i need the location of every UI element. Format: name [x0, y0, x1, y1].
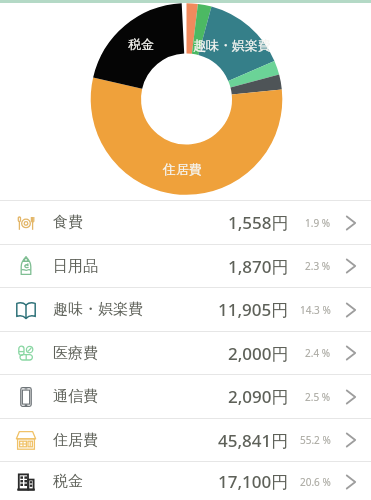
button[interactable]: 住居費	[0, 419, 371, 461]
staticText: 趣味・娯楽費	[193, 37, 271, 53]
staticText: 11,905円	[218, 298, 289, 321]
staticText: 通信費	[53, 387, 98, 406]
button[interactable]: 趣味・娯楽費	[0, 288, 371, 331]
staticText: 1.9 %	[305, 216, 331, 230]
staticText: 1,870円	[228, 255, 289, 278]
button[interactable]: 医療費	[0, 332, 371, 374]
staticText: 45,841円	[218, 429, 289, 452]
button[interactable]: 通信費	[0, 375, 371, 418]
staticText: 税金	[53, 472, 83, 491]
staticText: 2.3 %	[305, 259, 331, 273]
staticText: 14.3 %	[300, 303, 331, 317]
staticText: 2,000円	[228, 342, 289, 365]
button[interactable]: 食費	[0, 201, 371, 244]
staticText: 食費	[53, 213, 83, 232]
staticText: 2.5 %	[305, 390, 331, 404]
button[interactable]: 日用品	[0, 245, 371, 287]
staticText: 趣味・娯楽費	[53, 300, 143, 319]
staticText: 17,100円	[218, 470, 289, 493]
button[interactable]: 税金	[0, 460, 371, 500]
staticText: 税金	[128, 36, 154, 52]
staticText: 住居費	[163, 161, 202, 177]
staticText: 日用品	[53, 257, 98, 276]
staticText: 20.6 %	[300, 475, 331, 489]
staticText: 2,090円	[228, 385, 289, 408]
staticText: 1,558円	[228, 211, 289, 234]
staticText: 2.4 %	[305, 346, 331, 360]
staticText: 55.2 %	[300, 433, 331, 447]
staticText: 医療費	[53, 344, 98, 363]
staticText: 住居費	[53, 431, 98, 450]
